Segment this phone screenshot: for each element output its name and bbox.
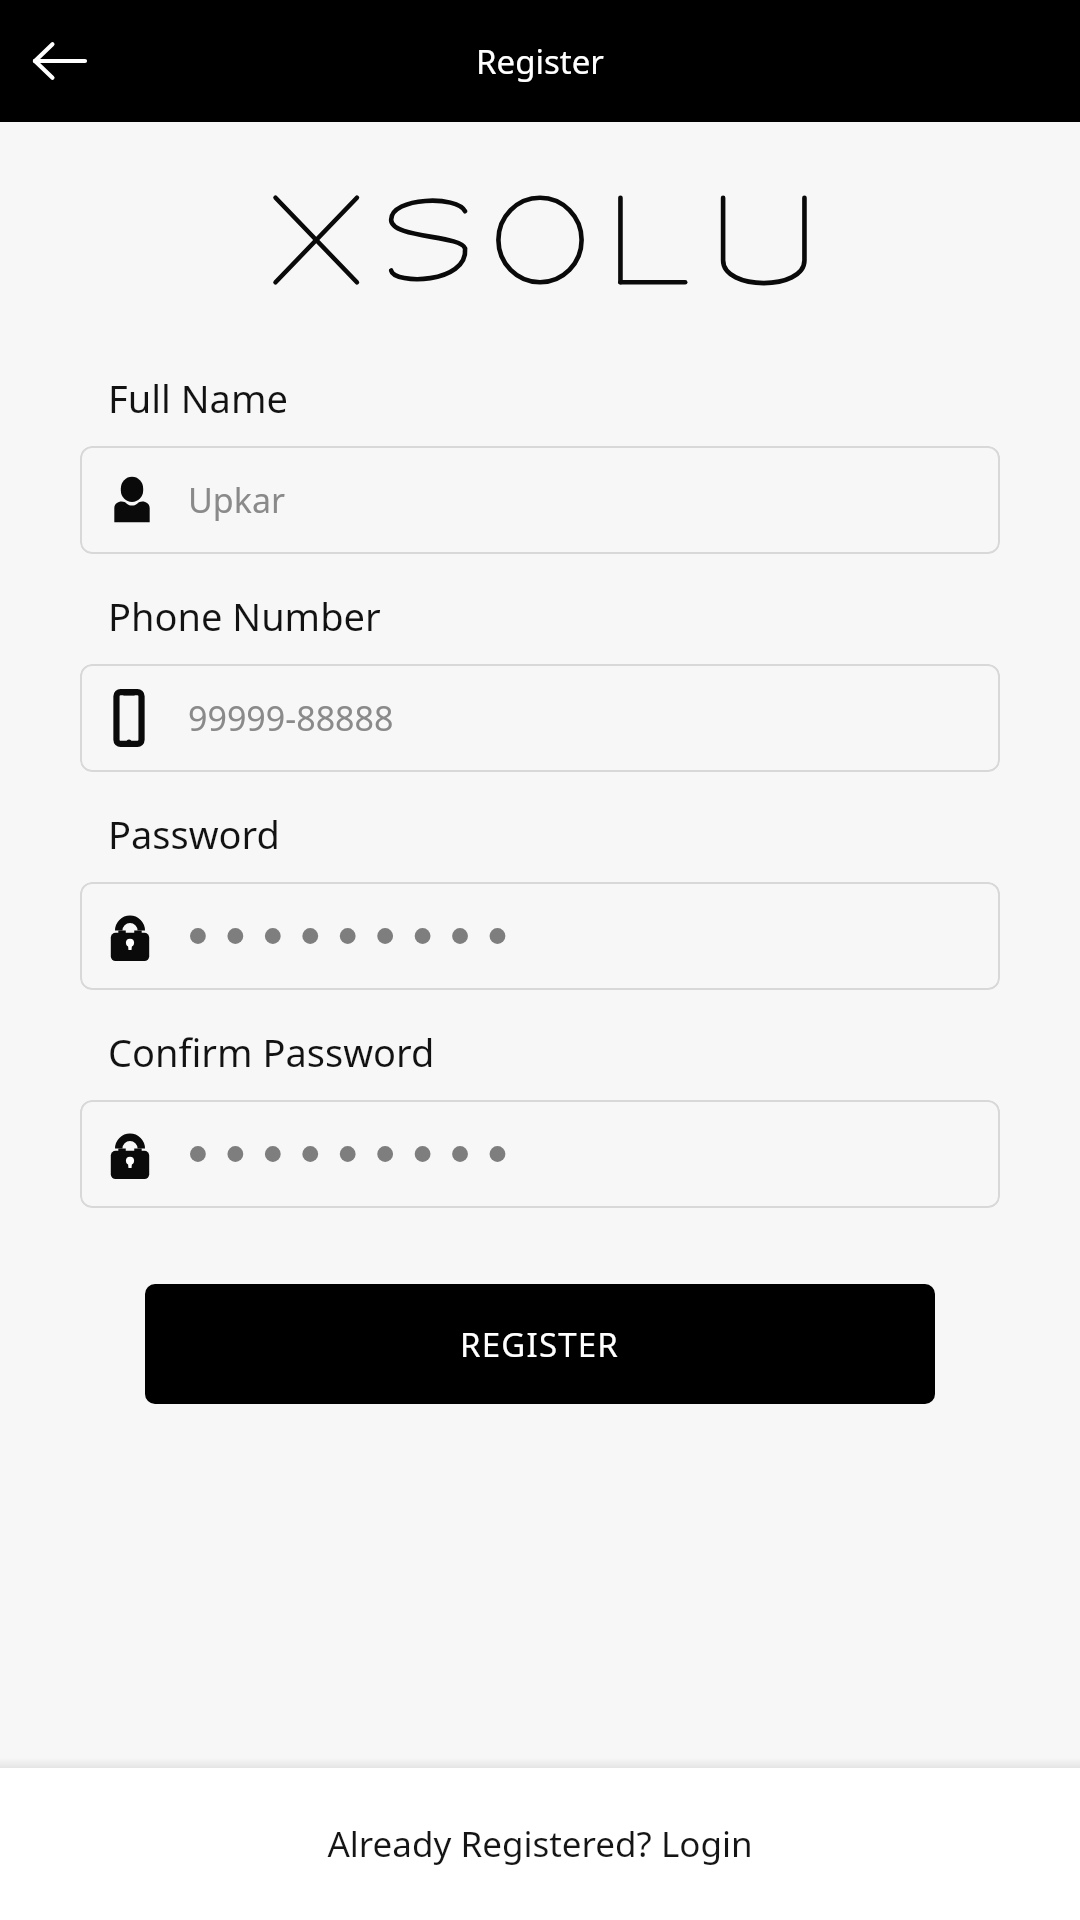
button[interactable]: 99999-88888 <box>80 664 1000 772</box>
staticText: 99999-88888 <box>188 695 394 741</box>
button[interactable]: REGISTER <box>145 1284 935 1404</box>
staticText: Phone Number <box>108 590 381 642</box>
staticText: Full Name <box>108 372 288 424</box>
staticText: Password <box>108 808 280 860</box>
staticText: REGISTER <box>460 1322 620 1367</box>
button[interactable]: Back <box>12 13 108 109</box>
staticText: Upkar <box>188 477 286 523</box>
button[interactable]: Upkar <box>80 446 1000 554</box>
staticText: Confirm Password <box>108 1026 435 1078</box>
staticText: Already Registered? Login <box>327 1820 753 1868</box>
button[interactable] <box>80 882 1000 990</box>
button[interactable] <box>80 1100 1000 1208</box>
button[interactable]: Already Registered? Login <box>0 1768 1080 1920</box>
staticText: Register <box>476 39 604 84</box>
